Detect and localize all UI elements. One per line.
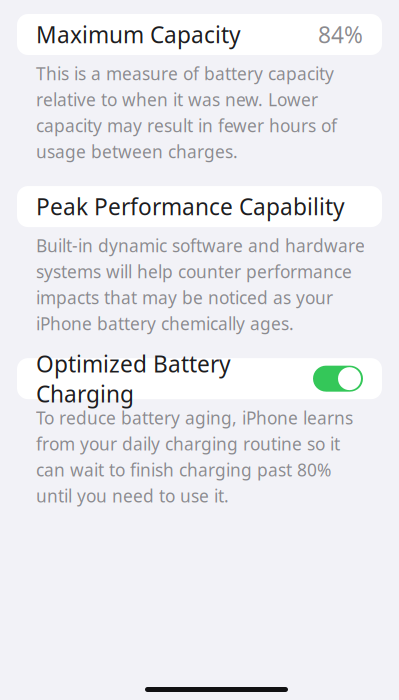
button[interactable]: Optimized Battery Charging [17, 358, 382, 399]
button[interactable]: Maximum Capacity [17, 14, 382, 55]
staticText: To reduce battery aging, iPhone learns f… [36, 406, 353, 507]
staticText: Peak Performance Capability [36, 191, 345, 222]
staticText: Optimized Battery Charging [36, 348, 231, 409]
staticText: Built-in dynamic software and hardware s… [36, 234, 365, 335]
button[interactable]: Peak Performance Capability [17, 186, 382, 227]
staticText: 84% [318, 19, 363, 49]
staticText: Maximum Capacity [36, 19, 241, 49]
staticText: This is a measure of battery capacity re… [36, 62, 337, 163]
